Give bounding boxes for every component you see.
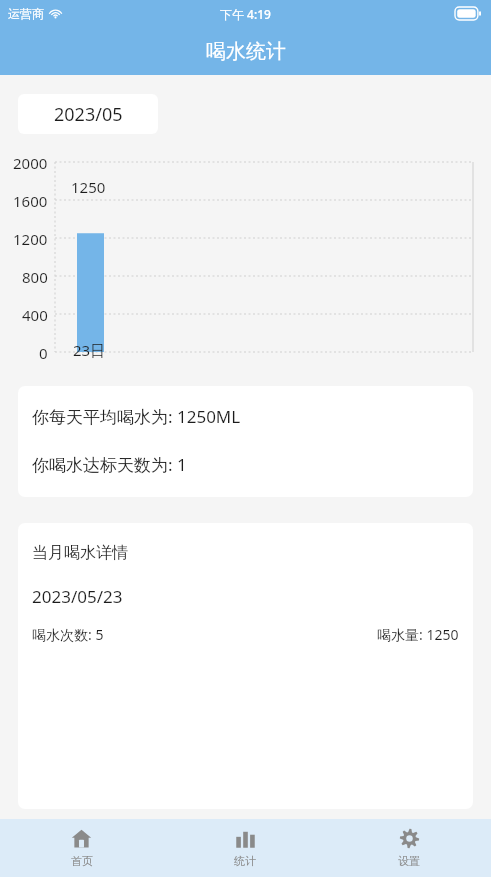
staticText: 统计 (234, 854, 256, 868)
staticText: 1250 (71, 177, 106, 197)
button[interactable]: 你每天平均喝水为: 1250ML (18, 386, 473, 497)
staticText: 下午 4:19 (220, 6, 271, 22)
button[interactable]: 首页 (0, 819, 163, 877)
other: 统计 (235, 828, 256, 849)
staticText: 当月喝水详情 (32, 543, 128, 563)
button[interactable]: 当月喝水详情 (18, 523, 473, 809)
staticText: 设置 (398, 854, 420, 868)
button[interactable]: 设置 (327, 819, 491, 877)
staticText: 2023/05/23 (32, 585, 123, 608)
staticText: 喝水次数: 5 (32, 625, 104, 644)
staticText: 2000 (13, 153, 48, 173)
staticText: 400 (22, 305, 48, 325)
staticText: 1600 (13, 191, 48, 211)
button[interactable]: 统计 (163, 819, 327, 877)
staticText: 你每天平均喝水为: 1250ML (32, 405, 241, 428)
staticText: 0 (39, 343, 48, 363)
staticText: 喝水量: 1250 (377, 625, 459, 644)
staticText: 首页 (71, 854, 93, 868)
staticText: 1200 (13, 229, 48, 249)
other: 设置 (399, 828, 420, 849)
staticText: 你喝水达标天数为: 1 (32, 453, 187, 476)
staticText: 2023/05 (54, 102, 123, 127)
staticText: 23日 (73, 340, 106, 360)
staticText: 喝水统计 (206, 39, 286, 64)
other: 首页 (71, 828, 92, 849)
staticText: 运营商 (8, 6, 44, 21)
staticText: 800 (22, 267, 48, 287)
button[interactable]: 2023/05 (18, 94, 158, 134)
